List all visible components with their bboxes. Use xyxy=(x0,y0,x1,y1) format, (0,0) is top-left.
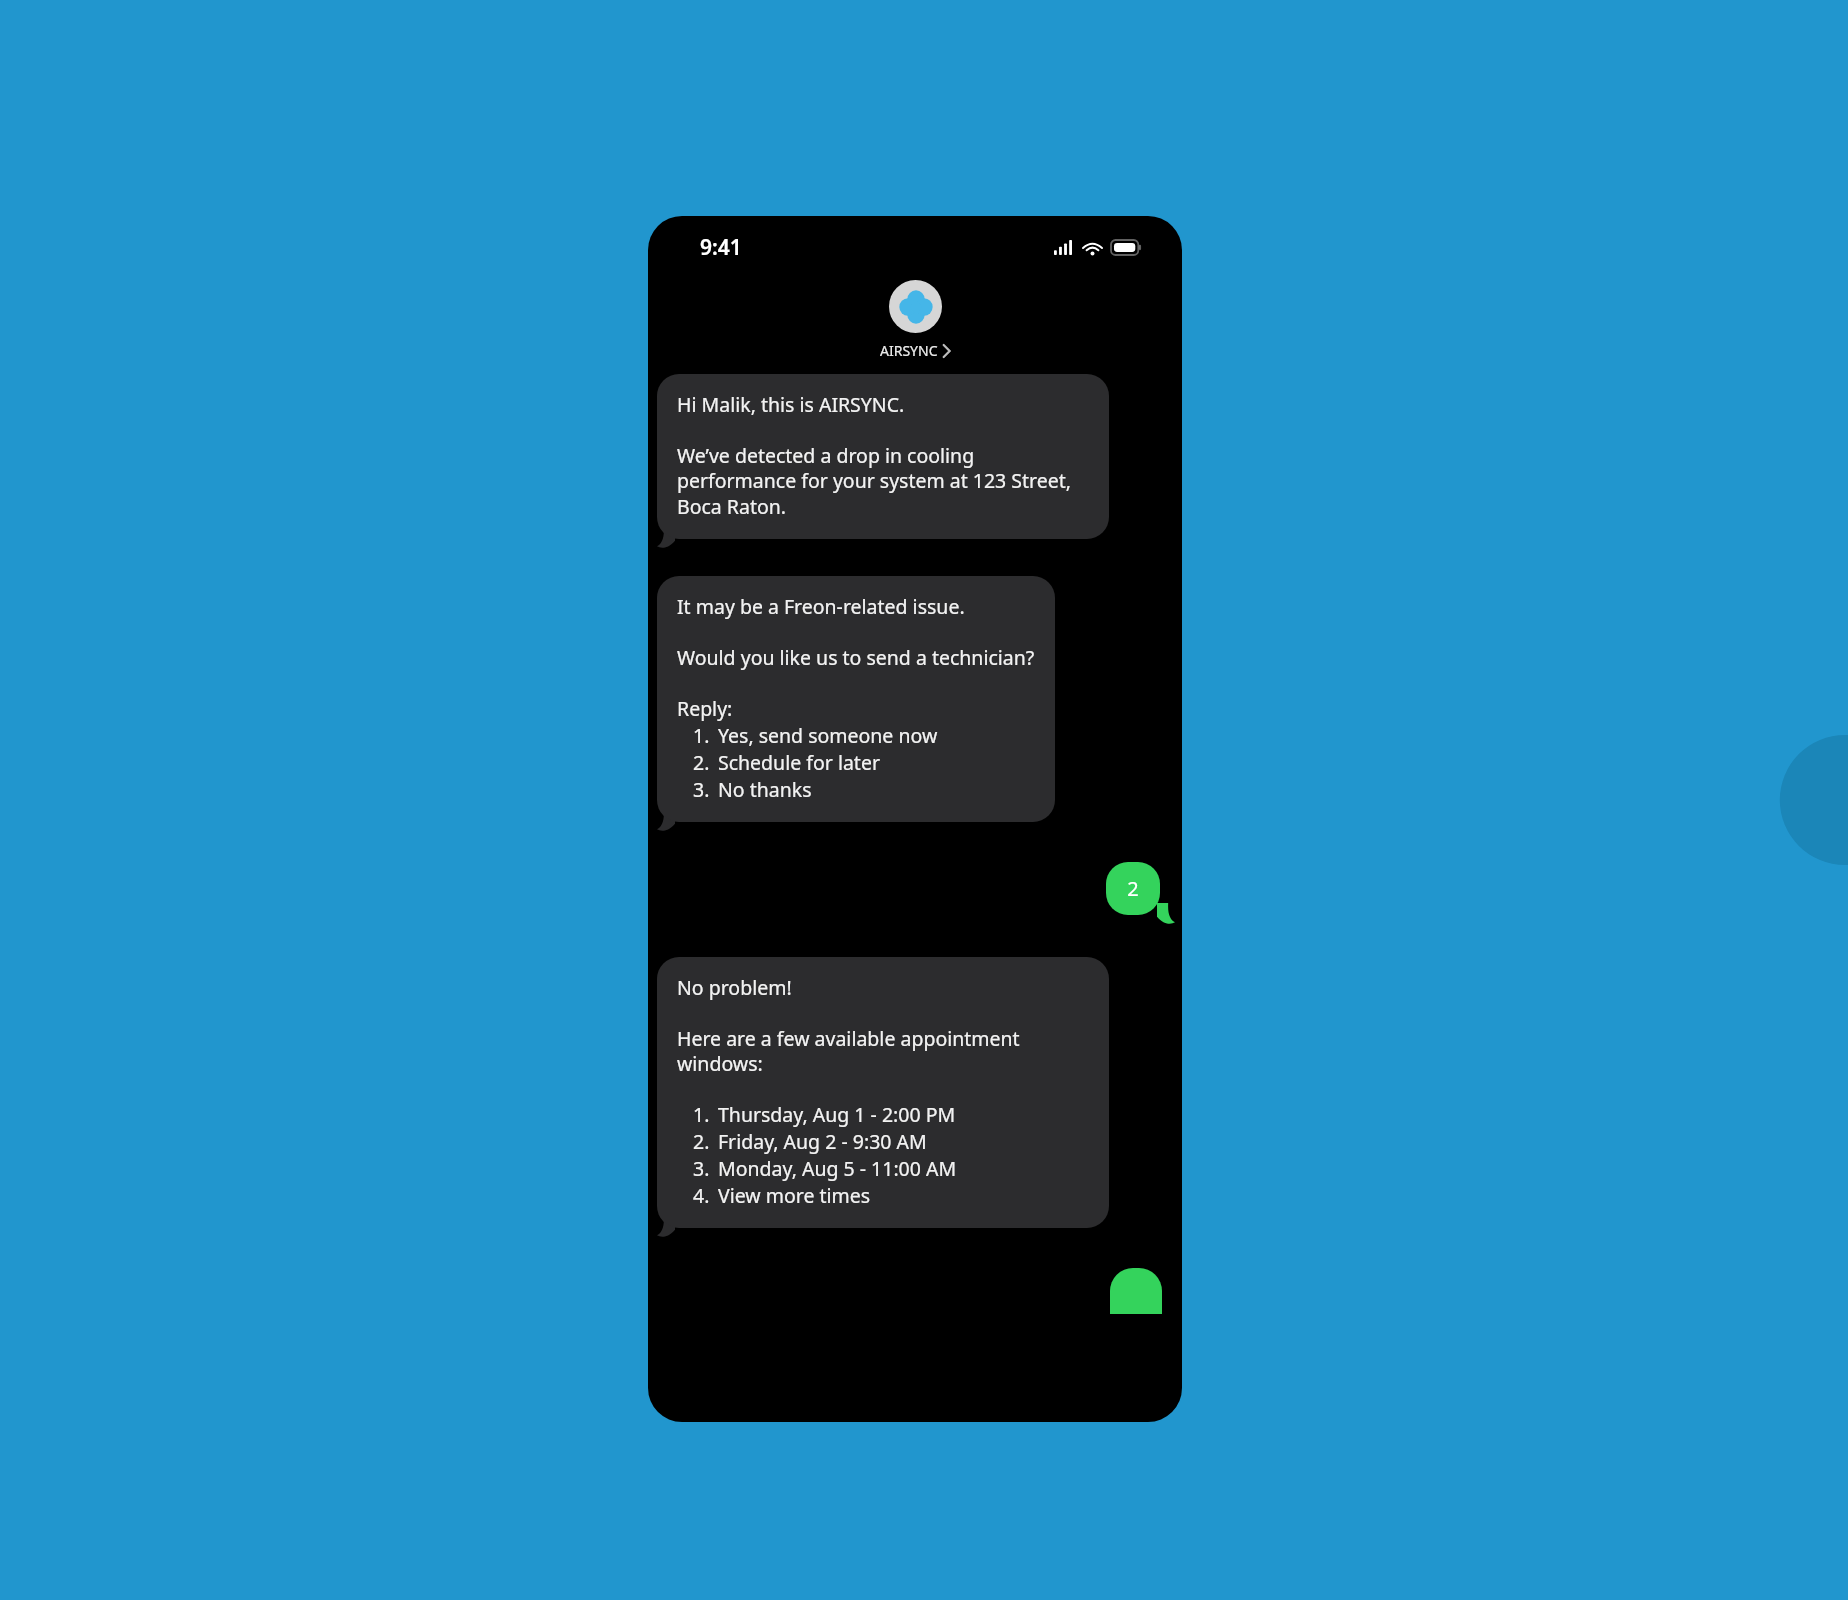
button[interactable]: It may be a Freon-related issue. xyxy=(657,576,1109,832)
other: Contact details xyxy=(943,345,950,357)
button[interactable]: AIRSYNC xyxy=(648,274,1182,360)
button[interactable]: 2 xyxy=(1106,862,1160,925)
staticText: 3. xyxy=(693,776,710,803)
staticText: No problem! xyxy=(677,974,792,1001)
staticText: AIRSYNC xyxy=(880,341,938,360)
staticText: 3. xyxy=(693,1155,710,1182)
staticText: Monday, Aug 5 - 11:00 AM xyxy=(718,1155,957,1182)
staticText: Thursday, Aug 1 - 2:00 PM xyxy=(718,1101,956,1128)
staticText: Hi Malik, this is AIRSYNC. xyxy=(677,391,905,418)
staticText: 2. xyxy=(693,749,710,776)
button[interactable]: Hi Malik, this is AIRSYNC. xyxy=(657,374,1109,549)
staticText: Friday, Aug 2 - 9:30 AM xyxy=(718,1128,927,1155)
staticText: 2. xyxy=(693,1128,710,1155)
button[interactable]: No problem! xyxy=(657,957,1109,1238)
staticText: 4. xyxy=(693,1182,710,1209)
staticText: Schedule for later xyxy=(718,749,880,776)
staticText: Yes, send someone now xyxy=(718,722,938,749)
staticText: No thanks xyxy=(718,776,812,803)
staticText: View more times xyxy=(718,1182,871,1209)
staticText: Would you like us to send a technician? xyxy=(677,644,1035,671)
staticText: Here are a few available appointment win… xyxy=(677,1025,1089,1077)
staticText: We’ve detected a drop in cooling perform… xyxy=(677,442,1089,520)
staticText: It may be a Freon-related issue. xyxy=(677,593,965,620)
staticText: Reply: xyxy=(677,695,733,722)
staticText: 1. xyxy=(693,722,710,749)
staticText: 2 xyxy=(1127,875,1139,902)
staticText: 9:41 xyxy=(700,233,742,262)
button[interactable]: Sent message xyxy=(1110,1268,1162,1314)
staticText: 1. xyxy=(693,1101,710,1128)
